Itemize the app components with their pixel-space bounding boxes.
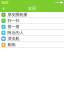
staticText: 购物 bbox=[7, 42, 15, 47]
staticText: 朋友圈相册 bbox=[7, 12, 27, 17]
button[interactable]: 漂流瓶 bbox=[0, 36, 64, 42]
staticText: 摇一摇 bbox=[7, 24, 19, 29]
staticText: 发现 bbox=[28, 6, 36, 11]
staticText: 附近的人 bbox=[7, 30, 23, 35]
button[interactable]: Back bbox=[0, 5, 7, 12]
button[interactable]: 朋友圈相册 bbox=[0, 12, 64, 18]
button[interactable]: 购物 bbox=[0, 42, 64, 48]
staticText: 扫一扫 bbox=[7, 18, 19, 23]
button[interactable]: 附近的人 bbox=[0, 30, 64, 36]
staticText: 9:41 bbox=[1, 0, 8, 5]
button[interactable]: 扫一扫 bbox=[0, 18, 64, 24]
button[interactable]: 摇一摇 bbox=[0, 24, 64, 30]
staticText: 漂流瓶 bbox=[7, 36, 19, 41]
